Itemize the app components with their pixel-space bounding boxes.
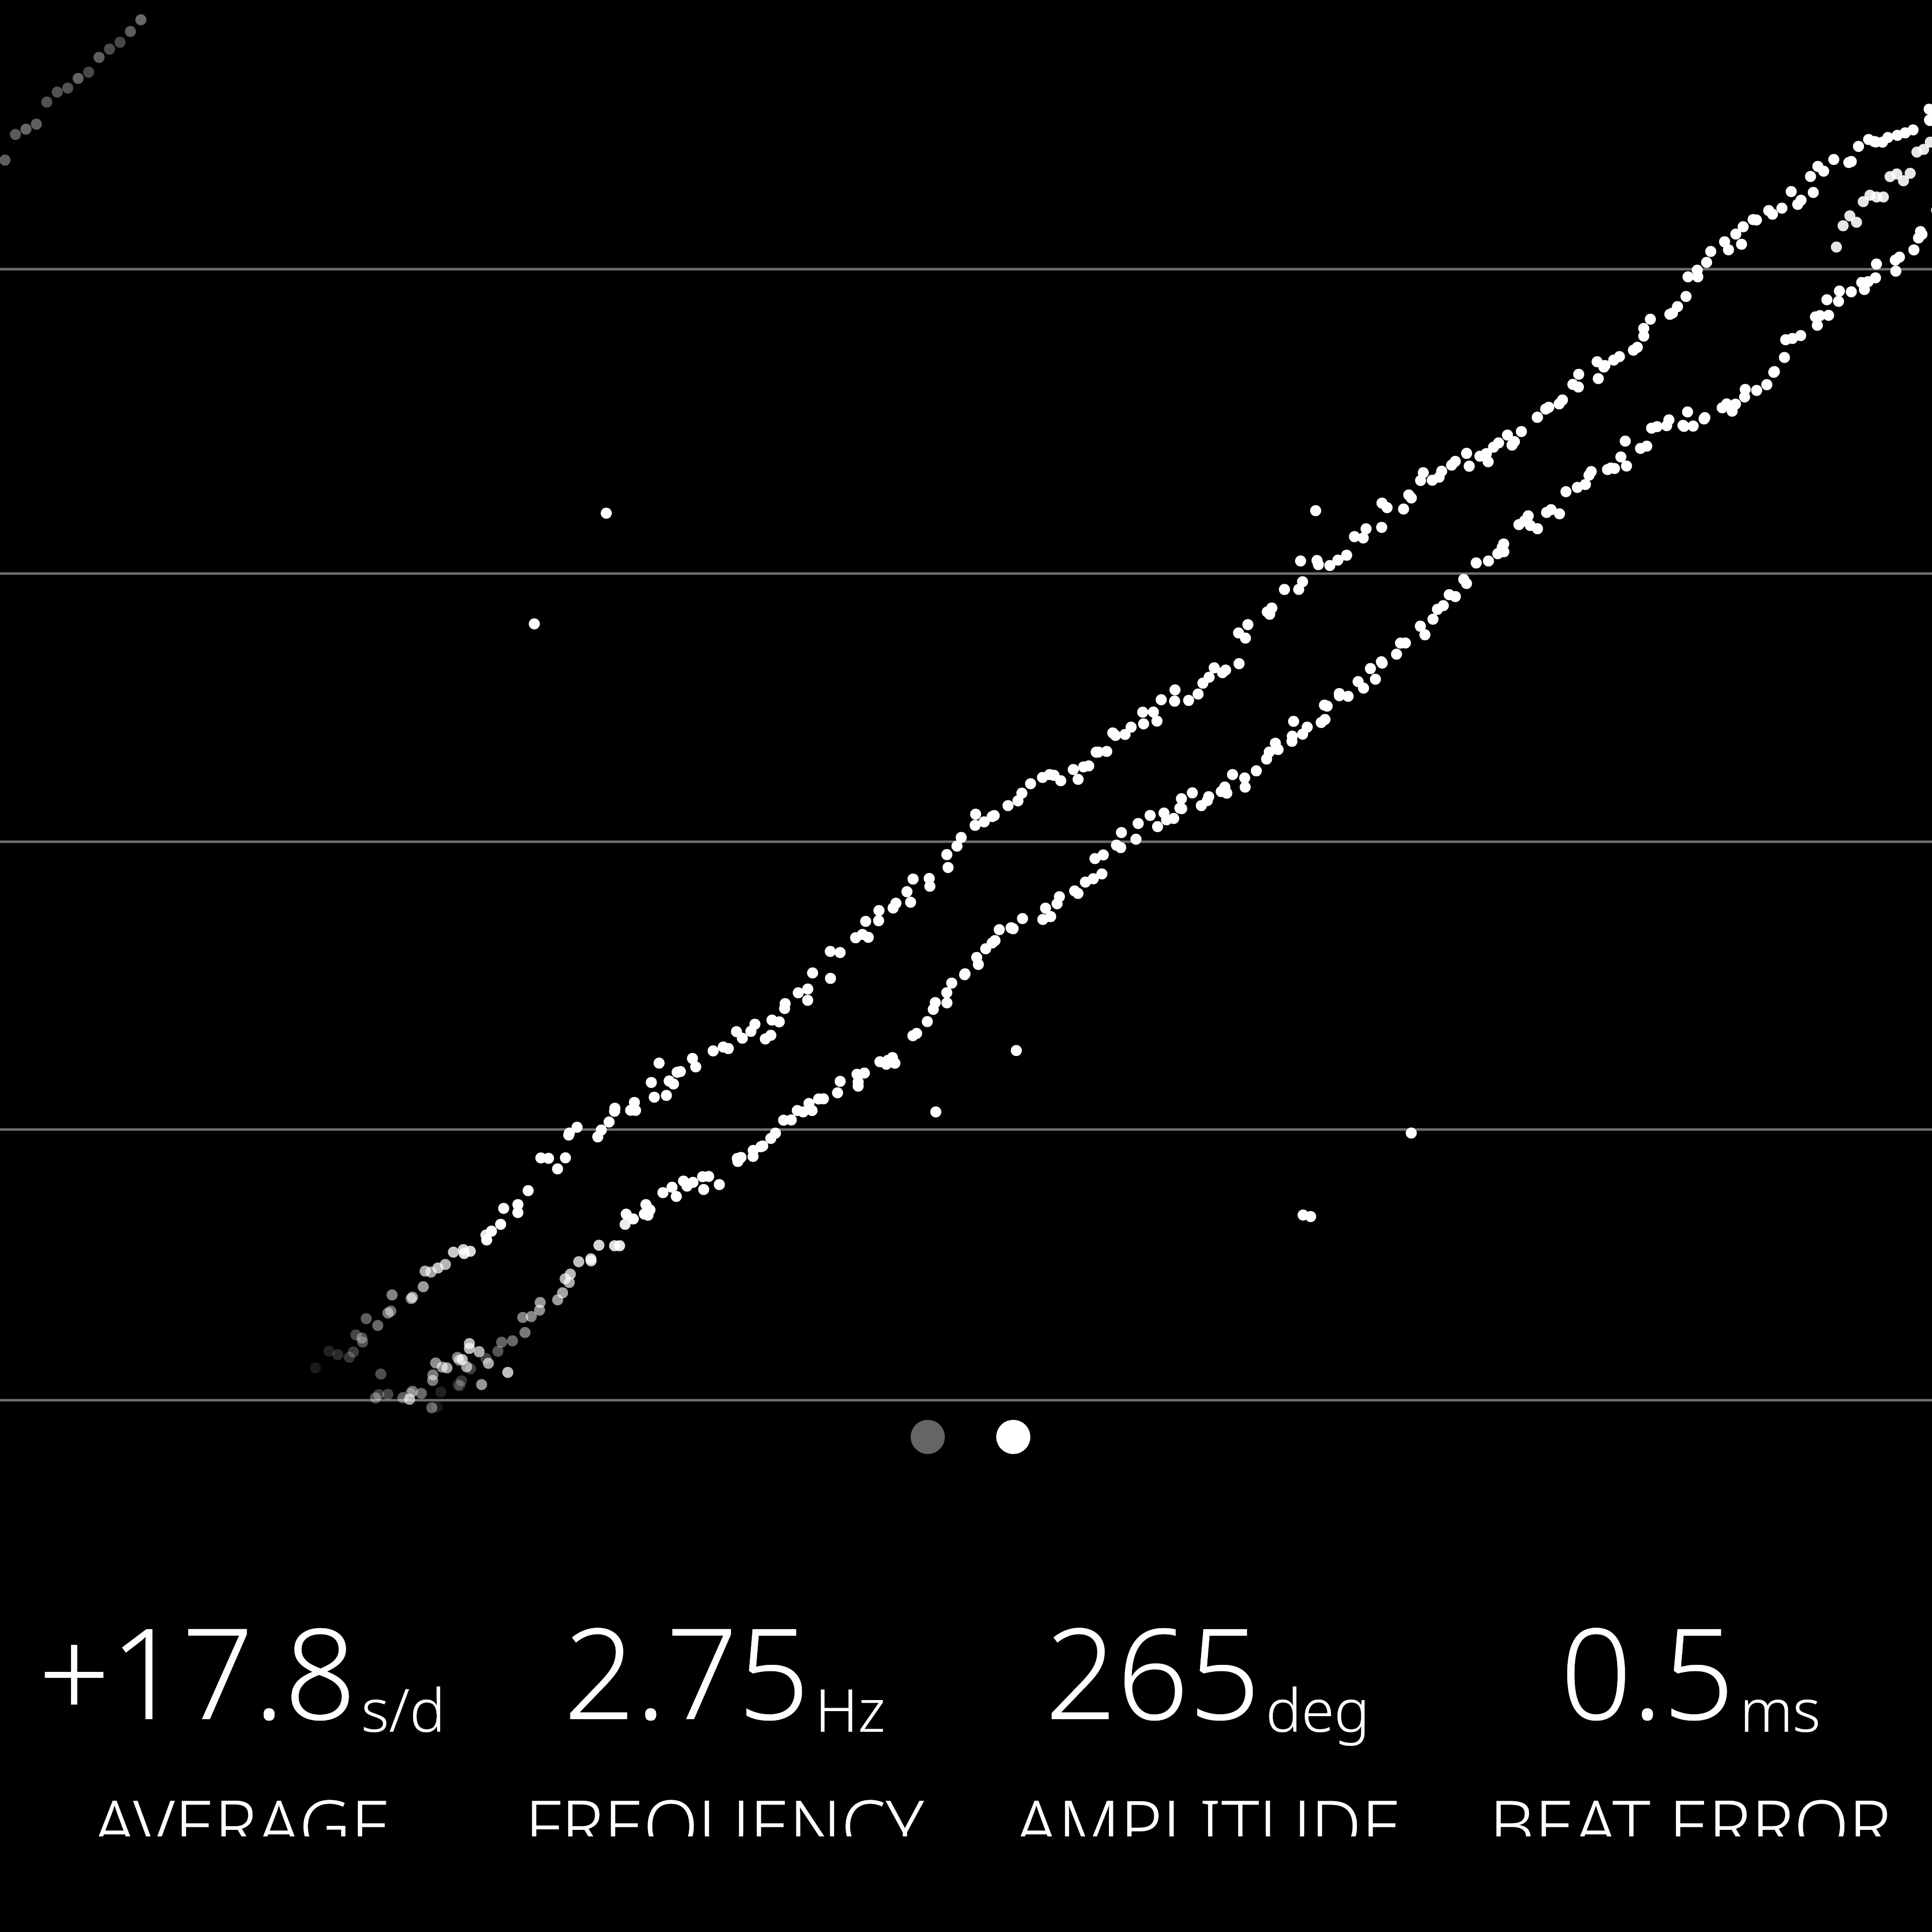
staticText: deg — [1266, 1668, 1370, 1749]
button[interactable]: 265 — [966, 1585, 1449, 1836]
staticText: AMPLITUDE — [1014, 1776, 1401, 1836]
staticText: 0.5 — [1560, 1585, 1735, 1756]
button[interactable]: Rate trace graph — [0, 0, 1932, 1409]
staticText: Hz — [815, 1668, 886, 1749]
staticText: s/d — [361, 1668, 445, 1749]
staticText: 265 — [1045, 1585, 1261, 1756]
staticText: AVERAGE — [93, 1776, 390, 1836]
staticText: ms — [1740, 1668, 1821, 1749]
staticText: 2.75 — [563, 1585, 810, 1756]
staticText: BEAT ERROR — [1489, 1776, 1892, 1836]
staticText: FREQUENCY — [525, 1776, 924, 1836]
button[interactable]: 0.5 — [1449, 1585, 1932, 1836]
button[interactable]: 2.75 — [483, 1585, 966, 1836]
button[interactable]: Page indicator — [911, 1420, 1030, 1454]
button[interactable]: +17.8 — [0, 1585, 483, 1836]
staticText: +17.8 — [38, 1585, 356, 1756]
